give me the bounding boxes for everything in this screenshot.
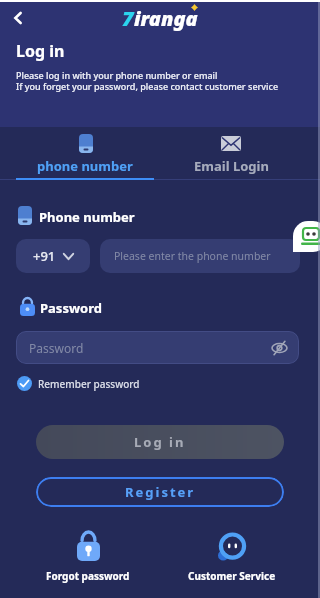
staticText: Log in	[16, 40, 65, 62]
button[interactable]	[293, 221, 320, 252]
button[interactable]: phone number	[6, 130, 164, 182]
button[interactable]: Register	[36, 477, 284, 507]
staticText: phone number	[37, 157, 133, 175]
staticText: iranga	[134, 5, 198, 32]
staticText: 7	[122, 5, 134, 32]
button[interactable]: Remember password	[17, 376, 140, 391]
staticText: Register	[125, 483, 196, 501]
staticText: Please enter the phone number	[114, 249, 271, 263]
button[interactable]: +91	[16, 239, 90, 273]
button[interactable]: Forgot password	[38, 532, 138, 583]
staticText: +91	[33, 247, 56, 265]
button[interactable]: Password	[16, 331, 299, 364]
staticText: Forgot password	[46, 569, 130, 583]
staticText: Password	[40, 299, 102, 317]
button[interactable]: Please enter the phone number	[100, 239, 300, 273]
staticText: Please log in with your phone number or …	[16, 69, 218, 81]
staticText: Customer Service	[188, 569, 276, 583]
staticText: Log in	[134, 433, 186, 451]
button[interactable]	[4, 4, 32, 32]
staticText: Email Login	[194, 157, 269, 175]
button[interactable]: Log in	[36, 425, 284, 459]
staticText: Password	[29, 340, 84, 356]
staticText: Phone number	[39, 208, 135, 226]
button[interactable]: Email Login	[151, 130, 311, 182]
staticText: Remember password	[38, 377, 140, 391]
staticText: If you forget your password, please cont…	[16, 80, 279, 92]
button[interactable]: Customer Service	[182, 532, 282, 583]
